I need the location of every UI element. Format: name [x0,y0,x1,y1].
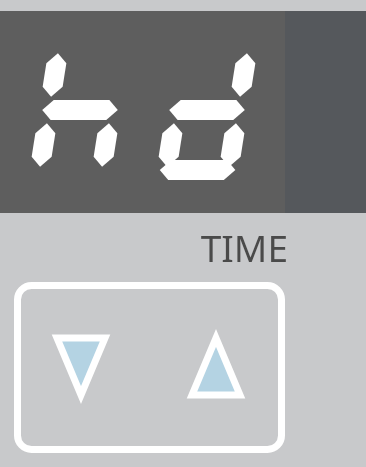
button[interactable]: Increase time [155,300,275,445]
button[interactable]: Decrease time [19,300,139,445]
staticText: TIME [108,222,288,266]
